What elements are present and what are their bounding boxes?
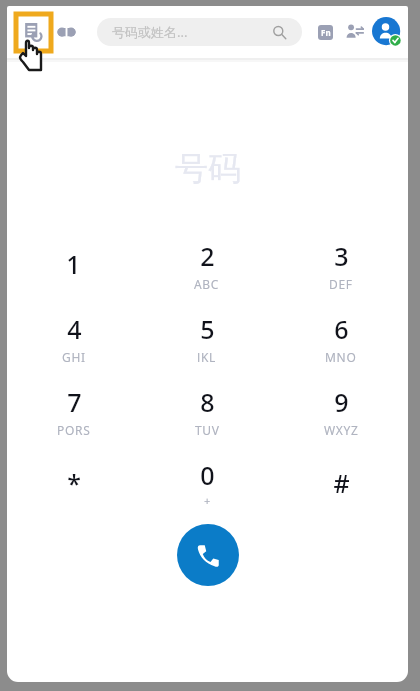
button[interactable]: 6 xyxy=(274,312,408,362)
staticText: JKL xyxy=(197,349,217,362)
button[interactable]: 8 xyxy=(140,385,274,435)
staticText: 4 xyxy=(67,312,82,346)
staticText: 1 xyxy=(66,247,81,281)
staticText: GHI xyxy=(62,349,86,362)
button[interactable]: * xyxy=(7,458,140,508)
button[interactable]: 3 xyxy=(274,239,408,289)
staticText: PQRS xyxy=(57,422,91,435)
button[interactable]: Call xyxy=(177,524,239,586)
staticText: MNO xyxy=(325,349,357,362)
staticText: Fn xyxy=(321,27,331,38)
button[interactable]: Call log xyxy=(15,14,51,50)
staticText: 号码 xyxy=(175,148,241,190)
staticText: 号码或姓名... xyxy=(112,23,188,41)
staticText: WXYZ xyxy=(324,422,359,435)
staticText: + xyxy=(204,493,211,508)
staticText: 6 xyxy=(334,312,349,346)
button[interactable]: Function xyxy=(313,20,337,44)
button[interactable]: # xyxy=(274,458,408,508)
button[interactable]: 5 xyxy=(140,312,274,362)
button[interactable]: Contacts xyxy=(51,17,81,47)
staticText: 8 xyxy=(200,385,215,419)
button[interactable]: 号码或姓名... xyxy=(97,18,302,46)
staticText: 0 xyxy=(200,458,215,492)
staticText: 2 xyxy=(200,239,215,273)
staticText: TUV xyxy=(195,422,220,435)
staticText: 9 xyxy=(334,385,349,419)
staticText: # xyxy=(333,466,350,500)
button[interactable]: Switch account xyxy=(341,19,367,45)
button[interactable]: 1 xyxy=(7,239,140,289)
staticText: DEF xyxy=(329,276,353,289)
button[interactable]: 4 xyxy=(7,312,140,362)
button[interactable]: 2 xyxy=(140,239,274,289)
staticText: * xyxy=(67,466,81,500)
button[interactable]: Account xyxy=(371,16,403,48)
button[interactable]: 9 xyxy=(274,385,408,435)
staticText: 3 xyxy=(334,239,349,273)
staticText: 7 xyxy=(67,385,82,419)
button[interactable]: 0 xyxy=(140,458,274,508)
staticText: ABC xyxy=(194,276,220,289)
staticText: 5 xyxy=(200,312,215,346)
button[interactable]: 7 xyxy=(7,385,140,435)
